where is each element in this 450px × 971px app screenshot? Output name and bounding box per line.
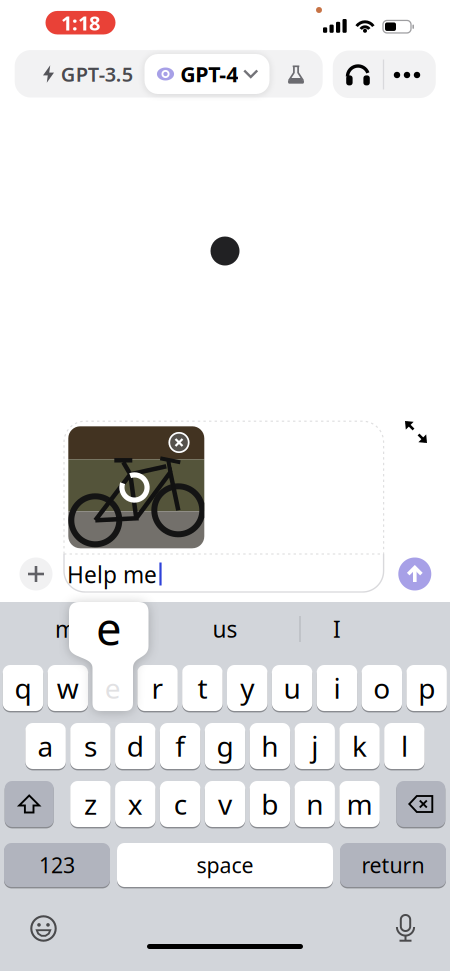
button[interactable]: w xyxy=(48,664,88,712)
button[interactable]: f xyxy=(160,722,200,770)
button[interactable]: c xyxy=(160,780,200,828)
staticText: n xyxy=(306,785,323,823)
button[interactable]: d xyxy=(115,722,156,770)
button[interactable]: k xyxy=(339,722,380,770)
button[interactable]: r xyxy=(137,664,178,712)
staticText: u xyxy=(284,669,301,707)
staticText: me xyxy=(55,614,89,644)
button[interactable]: a xyxy=(25,722,66,770)
button[interactable]: Voice conversation xyxy=(343,60,373,90)
staticText: q xyxy=(14,669,31,707)
staticText: d xyxy=(127,727,144,765)
staticText: c xyxy=(174,785,187,823)
staticText: f xyxy=(175,727,185,765)
staticText: y xyxy=(240,669,254,707)
staticText: g xyxy=(216,727,233,765)
button[interactable]: s xyxy=(70,722,111,770)
staticText: w xyxy=(57,669,79,707)
button[interactable]: Emoji xyxy=(30,915,57,942)
button[interactable]: o xyxy=(362,664,402,712)
button[interactable]: u xyxy=(272,664,312,712)
button[interactable]: v xyxy=(205,780,245,828)
button[interactable]: x xyxy=(115,780,156,828)
button[interactable]: GPT-4 xyxy=(144,54,269,94)
button[interactable]: t xyxy=(182,664,223,712)
button[interactable]: Delete xyxy=(396,780,445,828)
button[interactable]: m xyxy=(339,780,380,828)
button[interactable]: n xyxy=(294,780,335,828)
staticText: o xyxy=(373,669,390,707)
button[interactable]: i xyxy=(317,664,357,712)
button[interactable]: GPT-3.5 xyxy=(28,50,146,97)
button[interactable]: Remove attachment xyxy=(168,432,189,453)
button[interactable]: b xyxy=(250,780,290,828)
button[interactable]: l xyxy=(384,722,425,770)
staticText: space xyxy=(196,851,253,879)
button[interactable]: me xyxy=(32,614,112,644)
button[interactable]: us xyxy=(185,614,265,644)
button[interactable]: h xyxy=(250,722,290,770)
staticText: Help me xyxy=(67,559,157,589)
button[interactable]: g xyxy=(205,722,245,770)
button[interactable]: Expand input xyxy=(405,421,427,443)
button[interactable]: space xyxy=(117,842,333,888)
staticText: j xyxy=(311,727,318,765)
staticText: I xyxy=(333,614,341,644)
staticText: i xyxy=(333,669,340,707)
staticText: m xyxy=(347,785,373,823)
staticText: e xyxy=(105,669,121,707)
staticText: GPT-3.5 xyxy=(61,61,133,87)
button[interactable]: j xyxy=(294,722,335,770)
button[interactable]: 1:18 xyxy=(45,11,115,34)
button[interactable]: q xyxy=(3,664,43,712)
staticText: 123 xyxy=(39,851,75,879)
staticText: GPT-4 xyxy=(180,60,238,88)
staticText: t xyxy=(197,669,207,707)
staticText: p xyxy=(418,669,435,707)
button[interactable]: z xyxy=(70,780,111,828)
button[interactable]: 123 xyxy=(4,842,110,888)
button[interactable]: Shift xyxy=(5,780,54,828)
button[interactable]: Dictation xyxy=(394,913,416,943)
staticText: us xyxy=(212,614,237,644)
staticText: b xyxy=(261,785,278,823)
button[interactable]: I xyxy=(297,614,377,644)
staticText: s xyxy=(84,727,97,765)
staticText: v xyxy=(218,785,232,823)
button[interactable]: More options xyxy=(387,60,427,90)
staticText: 1:18 xyxy=(61,9,100,36)
button[interactable]: Model selector xyxy=(15,50,323,97)
staticText: k xyxy=(352,727,367,765)
button[interactable]: Add attachment xyxy=(19,557,52,590)
staticText: l xyxy=(401,727,408,765)
staticText: return xyxy=(361,851,424,879)
button[interactable]: return xyxy=(340,842,446,888)
button[interactable]: Experimental features xyxy=(287,65,304,83)
button[interactable]: p xyxy=(406,664,447,712)
staticText: x xyxy=(128,785,143,823)
button[interactable]: y xyxy=(227,664,267,712)
button[interactable]: e xyxy=(69,602,148,711)
staticText: e xyxy=(96,598,122,658)
staticText: h xyxy=(261,727,278,765)
staticText: z xyxy=(84,785,97,823)
staticText: r xyxy=(152,669,164,707)
staticText: a xyxy=(38,727,54,765)
button[interactable]: Send xyxy=(398,557,431,590)
